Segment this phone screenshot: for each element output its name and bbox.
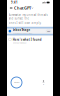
staticText: Here's what I found xyxy=(13,38,42,41)
button[interactable]: Voice mode xyxy=(10,76,23,89)
staticText: Scanning 42 conversations xyxy=(12,32,32,34)
staticText: Summarize my unread threads and surface … xyxy=(9,13,48,20)
staticText: 3 need a reply today xyxy=(13,42,27,44)
button[interactable]: Inbox Triage xyxy=(7,27,53,35)
staticText: Inbox Triage xyxy=(12,28,30,32)
button[interactable]: Microphone xyxy=(40,79,47,86)
staticText: 9:41 xyxy=(11,1,18,4)
staticText: View xyxy=(47,30,50,32)
staticText: ChatGPT xyxy=(14,5,31,11)
button[interactable]: Sidebar xyxy=(8,5,14,11)
staticText: Mic xyxy=(42,83,44,85)
staticText: ones I still owe a reply. xyxy=(9,21,42,25)
staticText: Listening xyxy=(13,82,19,83)
button[interactable]: ChatGPT xyxy=(14,4,33,12)
